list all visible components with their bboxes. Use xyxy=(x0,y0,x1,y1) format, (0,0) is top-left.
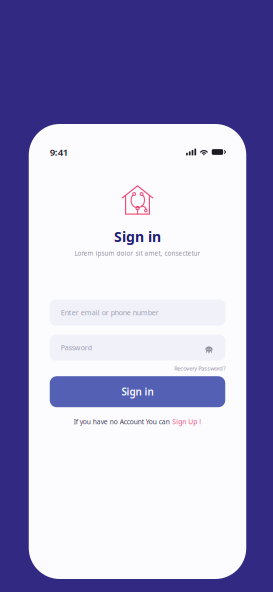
staticText: Recovery Password ? xyxy=(174,365,225,372)
staticText: Password xyxy=(61,343,92,352)
staticText: Sign Up ! xyxy=(172,417,201,426)
staticText: Sign in xyxy=(114,227,161,246)
staticText: 9:41 xyxy=(50,145,68,159)
button[interactable]: Recovery Password ? xyxy=(174,365,225,372)
button[interactable]: Sign Up ! xyxy=(172,417,201,426)
staticText: If you have no Account You can xyxy=(74,417,170,426)
staticText: Lorem ipsum dolor sit amet, consectetur xyxy=(74,249,200,258)
button[interactable]: Sign in xyxy=(50,376,225,407)
button[interactable]: Enter email or phone number xyxy=(50,300,225,326)
button[interactable]: Password xyxy=(50,335,225,361)
staticText: Sign in xyxy=(121,385,153,398)
staticText: Enter email or phone number xyxy=(61,308,159,317)
